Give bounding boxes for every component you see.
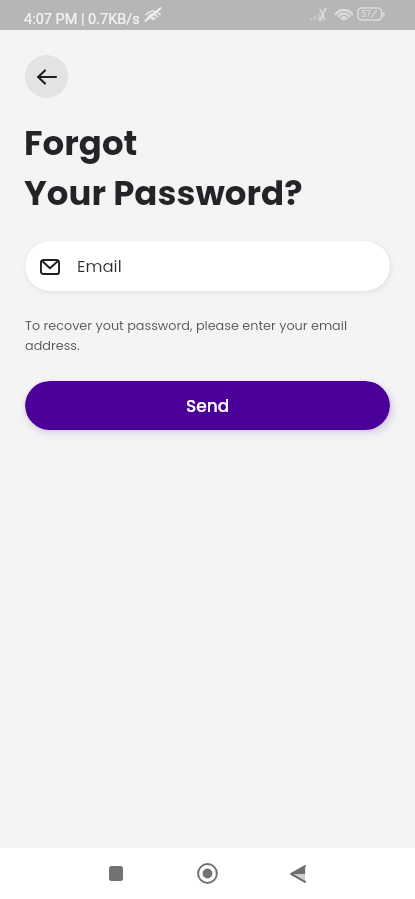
button[interactable]: Recent apps (71, 848, 161, 899)
button[interactable]: Back (253, 848, 343, 899)
button[interactable]: Send (25, 381, 390, 430)
button[interactable]: Home (162, 848, 252, 899)
button[interactable]: Email (25, 241, 390, 291)
staticText: 4:07 PM | 0.7KB/s (24, 11, 140, 28)
staticText: Send (186, 394, 230, 418)
staticText: To recover yout password, please enter y… (25, 317, 355, 354)
staticText: Forgot Your Password? (24, 119, 303, 217)
staticText: Email (77, 255, 122, 278)
staticText: 57 (361, 9, 372, 20)
button[interactable]: Back (25, 55, 68, 98)
